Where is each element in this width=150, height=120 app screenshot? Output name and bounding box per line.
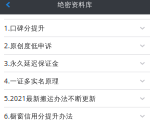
staticText: 6.橱窗信用分提升办法 [4, 112, 73, 120]
staticText: 4.一证多实名原理 [4, 76, 59, 85]
button[interactable]: 4.一证多实名原理 [0, 72, 150, 90]
staticText: 绝密资料库 [57, 0, 92, 9]
button[interactable]: Back [0, 0, 17, 9]
button[interactable]: 5.2021最新搬运办法不断更新 [0, 90, 150, 108]
button[interactable]: 6.橱窗信用分提升办法 [0, 108, 150, 120]
staticText: 1.口碑分提升 [4, 24, 45, 33]
staticText: 3.永久延迟保证金 [4, 59, 59, 68]
button[interactable]: 2.原创度低申诉 [0, 37, 150, 55]
staticText: 5.2021最新搬运办法不断更新 [4, 94, 96, 103]
staticText: 2.原创度低申诉 [4, 41, 52, 50]
button[interactable]: 1.口碑分提升 [0, 20, 150, 37]
button[interactable]: 3.永久延迟保证金 [0, 55, 150, 72]
